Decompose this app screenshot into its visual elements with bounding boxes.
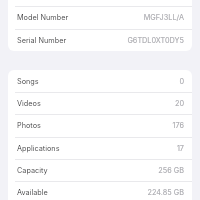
staticText: 0 [179,77,184,86]
staticText: 17 [176,144,184,153]
staticText: Capacity [17,166,48,175]
staticText: Videos [17,99,41,108]
button[interactable]: Photos [8,114,192,136]
button[interactable]: Songs [8,70,192,92]
staticText: Model Number [17,13,69,22]
button[interactable]: Capacity [8,159,192,181]
staticText: 224.85 GB [147,188,184,197]
staticText: 256 GB [158,166,184,175]
staticText: 20 [174,99,184,108]
staticText: Photos [17,121,41,130]
staticText: 176 [172,121,184,130]
staticText: G6TDL0XT0DY5 [127,36,184,45]
button[interactable]: Videos [8,92,192,114]
staticText: Serial Number [17,36,67,45]
button[interactable]: Model Number [8,6,192,28]
staticText: Songs [17,77,39,86]
staticText: Applications [17,144,60,153]
staticText: MGFJ3LL/A [143,13,184,22]
staticText: Available [17,188,48,197]
button[interactable]: Serial Number [8,29,192,51]
button[interactable]: Available [8,181,192,200]
button[interactable]: Applications [8,137,192,159]
